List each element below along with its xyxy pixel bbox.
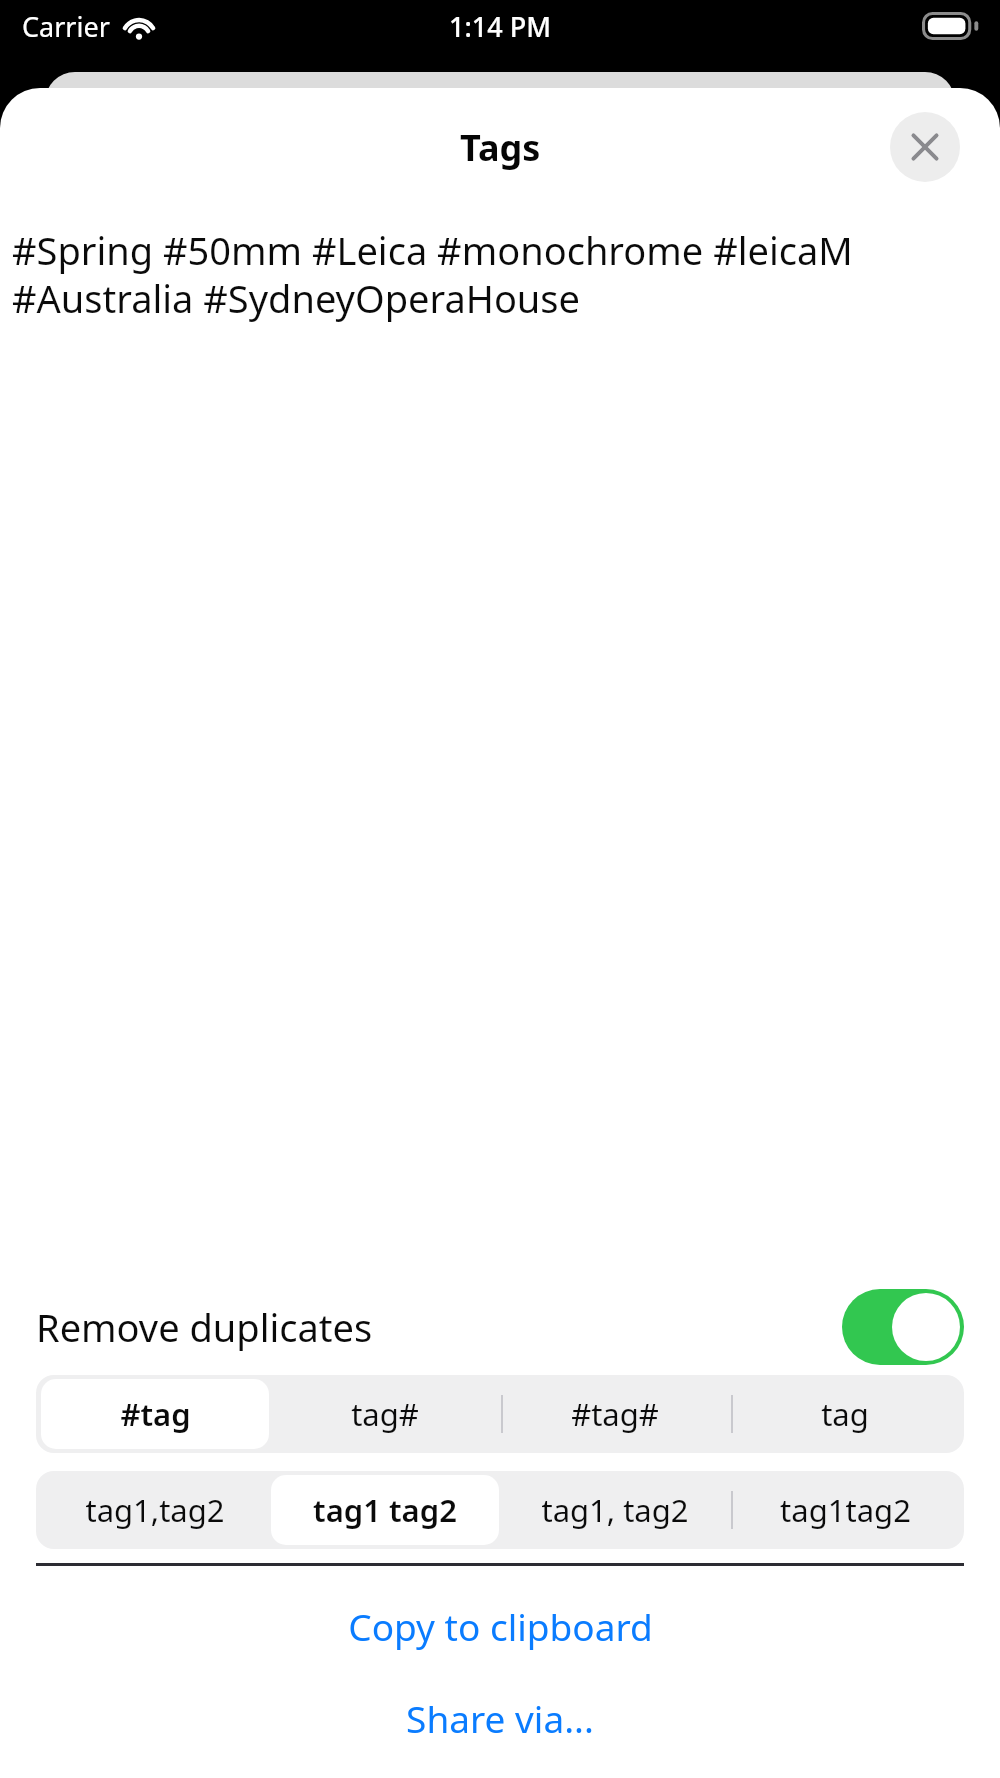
- button[interactable]: tag1 tag2: [271, 1475, 499, 1545]
- staticText: tag1, tag2: [541, 1489, 689, 1531]
- button[interactable]: Remove duplicates: [0, 1285, 1000, 1369]
- button[interactable]: Close: [890, 112, 960, 182]
- button[interactable]: tag1,tag2: [41, 1475, 269, 1545]
- staticText: tag: [821, 1393, 869, 1435]
- button[interactable]: tag1, tag2: [501, 1475, 729, 1545]
- staticText: #tag#: [571, 1393, 659, 1435]
- staticText: #tag: [120, 1393, 191, 1435]
- staticText: Share via...: [406, 1693, 594, 1743]
- staticText: Remove duplicates: [36, 1301, 373, 1353]
- button[interactable]: #tag#: [501, 1379, 729, 1449]
- button[interactable]: tag#: [271, 1379, 499, 1449]
- staticText: Carrier: [22, 8, 110, 45]
- button[interactable]: tag: [731, 1379, 959, 1449]
- staticText: tag1,tag2: [85, 1489, 225, 1531]
- staticText: tag#: [351, 1393, 419, 1435]
- button[interactable]: tag1tag2: [731, 1475, 959, 1545]
- staticText: Tags: [460, 123, 541, 172]
- button[interactable]: Remove duplicates toggle: [842, 1289, 964, 1365]
- staticText: #Spring #50mm #Leica #monochrome #leicaM…: [12, 224, 974, 324]
- button[interactable]: Copy to clipboard: [0, 1590, 1000, 1662]
- staticText: 1:14 PM: [449, 8, 551, 45]
- button[interactable]: Share via...: [0, 1682, 1000, 1754]
- staticText: tag1 tag2: [313, 1489, 457, 1531]
- staticText: tag1tag2: [780, 1489, 911, 1531]
- staticText: Copy to clipboard: [348, 1601, 653, 1651]
- button[interactable]: #tag: [41, 1379, 269, 1449]
